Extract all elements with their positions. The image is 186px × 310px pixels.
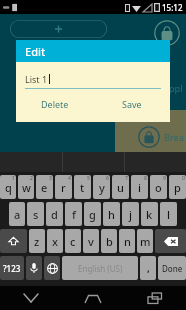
button[interactable]: r bbox=[55, 175, 72, 199]
staticText: 4 bbox=[68, 175, 71, 182]
button[interactable]: u bbox=[112, 175, 129, 199]
staticText: Edit bbox=[25, 44, 46, 59]
button[interactable]: p bbox=[169, 175, 186, 199]
button[interactable]: s bbox=[27, 202, 44, 226]
button[interactable]: Save bbox=[93, 98, 170, 122]
staticText: s bbox=[33, 207, 39, 222]
staticText: Done bbox=[162, 263, 183, 274]
staticText: English (US) bbox=[78, 263, 123, 274]
staticText: h bbox=[108, 207, 115, 222]
button[interactable]: v bbox=[83, 229, 99, 253]
staticText: 3 bbox=[49, 175, 52, 182]
button[interactable]: w bbox=[18, 175, 34, 199]
staticText: k bbox=[146, 207, 153, 222]
staticText: 9 bbox=[163, 175, 166, 182]
staticText: f bbox=[72, 207, 76, 222]
staticText: j bbox=[129, 207, 132, 222]
staticText: a bbox=[14, 207, 21, 222]
button[interactable]: , bbox=[140, 256, 156, 280]
button[interactable]: k bbox=[141, 202, 158, 226]
button[interactable]: Change language bbox=[44, 256, 60, 280]
staticText: 6 bbox=[106, 175, 109, 182]
staticText: Save bbox=[122, 98, 142, 110]
staticText: 2 bbox=[30, 175, 33, 182]
button[interactable]: c bbox=[65, 229, 81, 253]
button[interactable]: g bbox=[84, 202, 101, 226]
button[interactable]: b bbox=[101, 229, 117, 253]
staticText: 15:12 bbox=[162, 2, 183, 13]
staticText: ?123 bbox=[3, 263, 21, 274]
button[interactable]: n bbox=[119, 229, 135, 253]
button[interactable]: Backspace bbox=[155, 229, 186, 253]
button[interactable]: Voice input bbox=[26, 256, 42, 280]
staticText: r bbox=[61, 180, 66, 195]
staticText: c bbox=[70, 234, 76, 249]
staticText: ppl bbox=[169, 82, 183, 94]
staticText: w bbox=[22, 180, 31, 195]
button[interactable]: ?123 bbox=[0, 256, 24, 280]
button[interactable]: q bbox=[0, 175, 16, 199]
button[interactable]: Add list bbox=[10, 20, 107, 38]
button[interactable]: t bbox=[74, 175, 91, 199]
staticText: b bbox=[106, 234, 113, 249]
staticText: z bbox=[34, 234, 40, 249]
staticText: q bbox=[5, 180, 12, 195]
staticText: g bbox=[89, 207, 96, 222]
staticText: 1 bbox=[12, 175, 15, 182]
button[interactable]: Recent apps bbox=[124, 286, 186, 310]
button[interactable]: o bbox=[150, 175, 167, 199]
staticText: o bbox=[155, 180, 162, 195]
staticText: y bbox=[99, 180, 105, 195]
button[interactable]: f bbox=[65, 202, 82, 226]
button[interactable]: y bbox=[93, 175, 110, 199]
button[interactable]: Home bbox=[62, 286, 124, 310]
staticText: d bbox=[51, 207, 58, 222]
staticText: 5 bbox=[87, 175, 90, 182]
button[interactable]: z bbox=[29, 229, 45, 253]
staticText: 0 bbox=[182, 175, 185, 182]
staticText: t bbox=[80, 180, 85, 195]
button[interactable]: Hide keyboard bbox=[0, 286, 62, 310]
staticText: i bbox=[138, 180, 141, 195]
button[interactable]: i bbox=[131, 175, 148, 199]
staticText: v bbox=[88, 234, 94, 249]
button[interactable]: m bbox=[137, 229, 153, 253]
staticText: u bbox=[117, 180, 124, 195]
staticText: p bbox=[174, 180, 181, 195]
staticText: , bbox=[147, 261, 150, 275]
button[interactable]: j bbox=[122, 202, 139, 226]
button[interactable]: Done bbox=[158, 256, 186, 280]
staticText: 8 bbox=[144, 175, 147, 182]
button[interactable]: d bbox=[46, 202, 63, 226]
staticText: 7 bbox=[125, 175, 128, 182]
button[interactable]: a bbox=[9, 202, 25, 226]
button[interactable]: English (US) bbox=[62, 256, 138, 280]
staticText: m bbox=[140, 234, 151, 249]
staticText: x bbox=[52, 234, 58, 249]
button[interactable]: l bbox=[160, 202, 177, 226]
staticText: e bbox=[41, 180, 48, 195]
button[interactable]: Shift bbox=[0, 229, 27, 253]
staticText: Brea bbox=[164, 131, 184, 143]
staticText: List 1 bbox=[25, 73, 48, 85]
staticText: Delete bbox=[41, 98, 69, 110]
button[interactable]: x bbox=[47, 229, 63, 253]
button[interactable]: Delete bbox=[16, 98, 93, 122]
staticText: l bbox=[167, 207, 170, 222]
button[interactable]: h bbox=[103, 202, 120, 226]
button[interactable]: List 1 bbox=[25, 73, 161, 85]
button[interactable]: e bbox=[36, 175, 53, 199]
staticText: n bbox=[124, 234, 131, 249]
